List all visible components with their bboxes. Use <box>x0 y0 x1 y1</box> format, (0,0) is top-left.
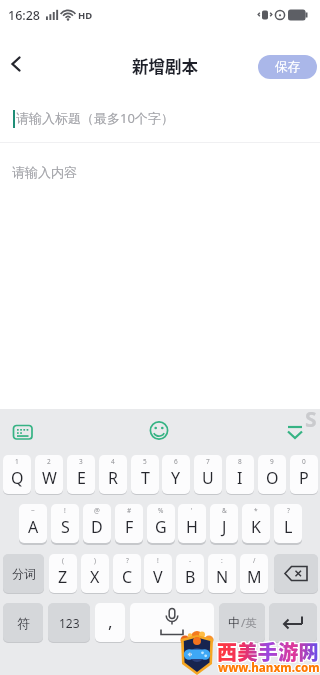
staticText: 保存 <box>275 59 300 75</box>
staticText: ~ <box>31 506 35 515</box>
staticText: S <box>61 516 70 538</box>
staticText: X <box>90 566 100 588</box>
staticText: ' <box>191 506 193 515</box>
staticText: B <box>185 566 196 588</box>
staticText: 4 <box>111 457 115 466</box>
staticText: 西美手游网 <box>217 636 319 665</box>
staticText: N <box>216 566 229 588</box>
staticText: /英 <box>241 615 257 631</box>
staticText: ! <box>157 556 159 565</box>
staticText: # <box>127 506 132 515</box>
staticText: J <box>222 516 227 538</box>
staticText: 中 <box>228 615 241 631</box>
staticText: 西美手游网 <box>217 637 319 666</box>
staticText: E <box>77 467 86 489</box>
staticText: www.hanxm.com <box>219 660 320 675</box>
staticText: D <box>91 516 103 538</box>
staticText: 请输入标题（最多10个字） <box>16 109 174 127</box>
staticText: ) <box>94 556 96 565</box>
staticText: ? <box>287 506 290 515</box>
staticText: T <box>141 467 150 489</box>
staticText: 6 <box>174 457 178 466</box>
staticText: & <box>222 506 227 515</box>
staticText: HD <box>78 9 93 22</box>
staticText: F <box>125 516 134 538</box>
staticText: 8 <box>238 457 242 466</box>
staticText: : <box>221 556 223 565</box>
staticText: 西美手游网 <box>218 637 320 666</box>
staticText: 西美手游网 <box>216 636 318 665</box>
staticText: S <box>305 405 317 434</box>
staticText: / <box>253 556 256 565</box>
staticText: Q <box>11 467 24 489</box>
staticText: * <box>254 506 258 515</box>
staticText: A <box>28 516 39 538</box>
staticText: 西美手游网 <box>216 637 318 666</box>
staticText: R <box>108 467 118 489</box>
staticText: L <box>284 516 293 538</box>
staticText: W <box>42 467 57 489</box>
staticText: 符 <box>17 615 30 631</box>
staticText: ( <box>62 556 64 565</box>
staticText: V <box>153 566 163 588</box>
staticText: ? <box>126 556 129 565</box>
staticText: 西美手游网 <box>218 636 320 665</box>
staticText: M <box>247 566 262 588</box>
staticText: 0 <box>302 457 306 466</box>
staticText: G <box>155 516 167 538</box>
staticText: www.hanxm.com <box>218 661 320 675</box>
staticText: H <box>186 516 198 538</box>
staticText: P <box>299 467 309 489</box>
staticText: 3 <box>79 457 83 466</box>
staticText: 西美手游网 <box>216 638 318 667</box>
staticText: C <box>122 566 133 588</box>
staticText: www.hanxm.com <box>218 659 320 675</box>
staticText: www.hanxm.com <box>217 660 319 675</box>
staticText: O <box>266 467 279 489</box>
staticText: Z <box>58 566 68 588</box>
staticText: 16:28 <box>8 7 41 24</box>
staticText: Y <box>171 467 181 489</box>
staticText: www.hanxm.com <box>218 660 320 675</box>
staticText: I <box>237 467 243 489</box>
staticText: , <box>108 610 113 633</box>
staticText: 西美手游网 <box>217 638 319 667</box>
staticText: ! <box>64 506 66 515</box>
staticText: 9 <box>270 457 274 466</box>
staticText: 分词 <box>12 566 36 581</box>
staticText: 7 <box>206 457 210 466</box>
staticText: 123 <box>59 615 80 631</box>
staticText: 西美手游网 <box>218 638 320 667</box>
staticText: K <box>251 516 261 538</box>
staticText: 1 <box>15 457 19 466</box>
staticText: - <box>189 556 192 565</box>
staticText: 5 <box>143 457 147 466</box>
staticText: 请输入内容 <box>12 164 77 180</box>
staticText: % <box>158 506 164 515</box>
staticText: 2 <box>47 457 51 466</box>
staticText: U <box>202 467 214 489</box>
staticText: @ <box>94 506 100 515</box>
staticText: 新增剧本 <box>132 54 198 76</box>
